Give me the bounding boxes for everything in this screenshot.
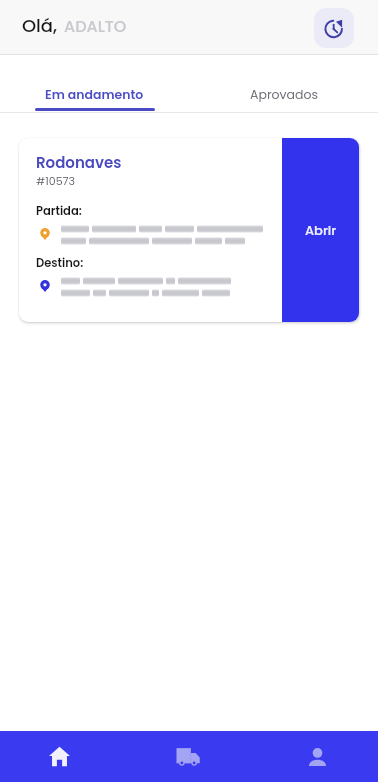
button[interactable]: Histórico [314, 8, 354, 48]
staticText: Abrir [305, 221, 337, 239]
button[interactable]: Perfil [252, 731, 378, 782]
button[interactable]: Entregas [126, 731, 252, 782]
button[interactable]: Abrir [282, 138, 359, 322]
staticText: Rodonaves [36, 152, 122, 173]
staticText: Em andamento [45, 86, 144, 103]
staticText: Olá, [22, 13, 62, 38]
staticText: Destino: [36, 255, 84, 271]
button[interactable]: Início [0, 731, 126, 782]
staticText: ADALTO [64, 15, 127, 37]
button[interactable]: Em andamento [0, 55, 189, 113]
button[interactable]: Rodonaves [19, 138, 359, 322]
staticText: Partida: [36, 203, 82, 219]
staticText: #10573 [36, 173, 76, 188]
staticText: Aprovados [250, 86, 318, 103]
button[interactable]: Aprovados [189, 55, 378, 113]
